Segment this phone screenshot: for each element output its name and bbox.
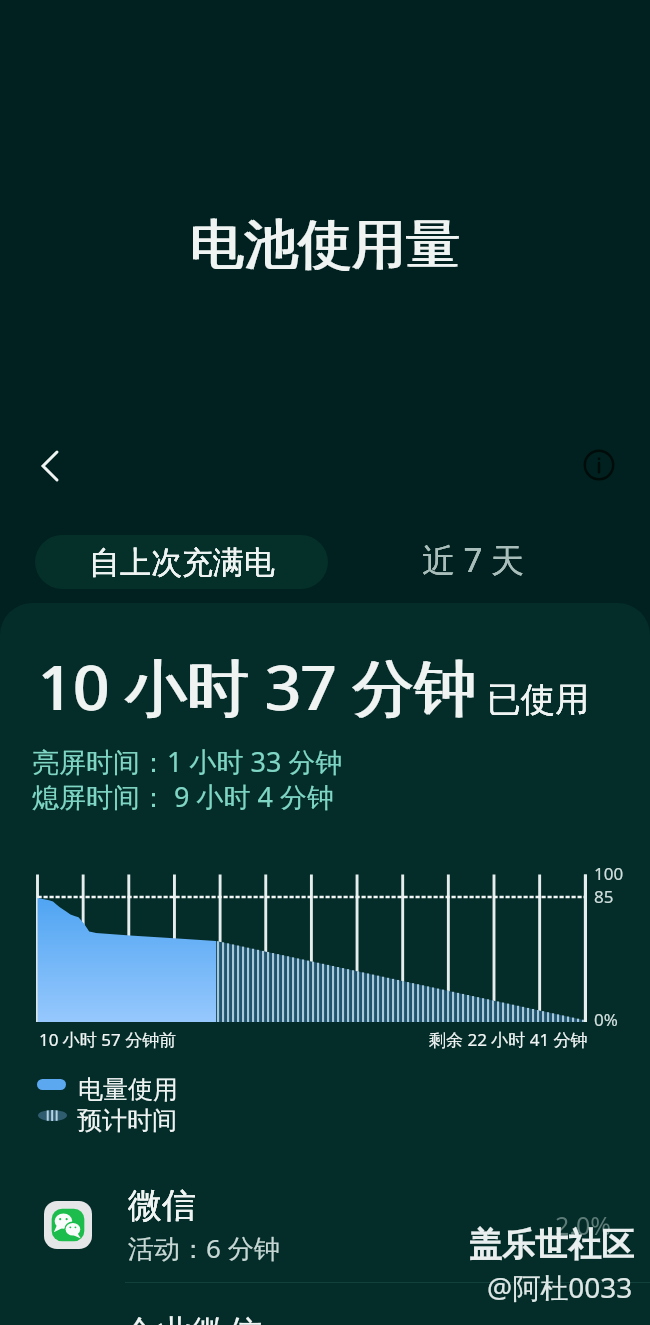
button[interactable]: 微信: [0, 1170, 650, 1280]
staticText: 近 7 天: [422, 537, 525, 582]
staticText: @阿杜0033: [487, 1268, 633, 1306]
staticText: 已使用: [487, 678, 589, 721]
staticText: 微信: [128, 1184, 196, 1227]
staticText: 已使用: [487, 678, 589, 721]
staticText: 自上次充满电: [89, 543, 275, 582]
staticText: 预计时间: [77, 1105, 177, 1136]
staticText: 企业微信: [122, 1311, 262, 1325]
staticText: 剩余 22 小时 41 分钟: [429, 1028, 588, 1051]
staticText: 电量使用: [78, 1074, 178, 1105]
staticText: 微信: [128, 1184, 196, 1227]
staticText: 亮屏时间：1 小时 33 分钟: [32, 743, 343, 780]
staticText: 自上次充满电: [89, 543, 275, 582]
staticText: 10 小时 37 分钟: [39, 644, 478, 729]
staticText: 10 小时 57 分钟前: [39, 1028, 177, 1051]
staticText: 活动：6 分钟: [128, 1230, 280, 1266]
button[interactable]: Information: [578, 444, 620, 486]
staticText: 2.0%: [555, 1208, 612, 1242]
staticText: 熄屏时间： 9 小时 4 分钟: [32, 778, 334, 815]
staticText: 电池使用量: [189, 211, 459, 279]
staticText: 85: [594, 885, 614, 908]
staticText: 0%: [594, 1008, 618, 1031]
button[interactable]: 自上次充满电: [35, 535, 328, 589]
staticText: 100: [594, 862, 624, 885]
staticText: 10 小时 37 分钟: [37, 644, 476, 729]
staticText: 电池使用量: [191, 211, 461, 279]
button[interactable]: Back: [27, 443, 73, 489]
staticText: 近 7 天: [422, 537, 525, 582]
button[interactable]: 近 7 天: [403, 532, 543, 586]
staticText: 盖乐世社区: [469, 1224, 634, 1266]
